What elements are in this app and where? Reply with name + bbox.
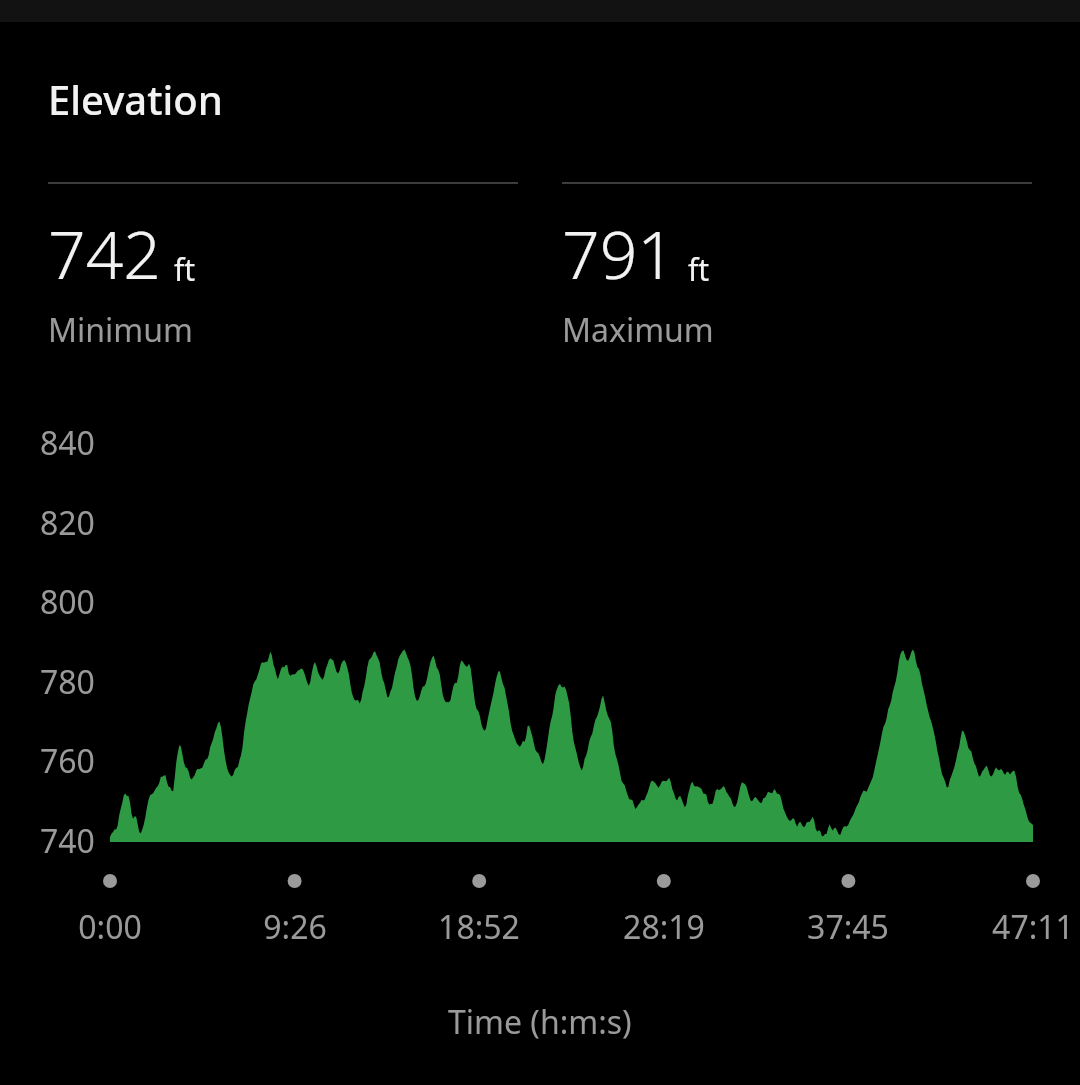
staticText: Maximum <box>562 308 714 352</box>
staticText: 37:45 <box>807 905 889 949</box>
staticText: 18:52 <box>438 905 520 949</box>
staticText: Minimum <box>48 308 193 352</box>
staticText: Elevation <box>48 72 223 126</box>
staticText: 780 <box>40 660 95 704</box>
staticText: 791 <box>562 208 676 298</box>
staticText: ft <box>688 249 710 290</box>
staticText: Time (h:m:s) <box>448 1000 632 1044</box>
staticText: 0:00 <box>78 905 142 949</box>
staticText: 820 <box>40 501 95 545</box>
button[interactable]: 742 <box>48 182 518 352</box>
other: Elevation over time chart <box>0 0 1080 1085</box>
staticText: 760 <box>40 739 95 783</box>
staticText: ft <box>174 249 196 290</box>
staticText: 840 <box>40 421 95 465</box>
button[interactable]: Elevation <box>48 72 223 126</box>
staticText: 28:19 <box>623 905 705 949</box>
staticText: 47:11 <box>992 905 1074 949</box>
staticText: 740 <box>40 819 95 863</box>
staticText: 800 <box>40 580 95 624</box>
staticText: 742 <box>48 208 162 298</box>
staticText: 9:26 <box>263 905 327 949</box>
button[interactable]: 791 <box>562 182 1032 352</box>
